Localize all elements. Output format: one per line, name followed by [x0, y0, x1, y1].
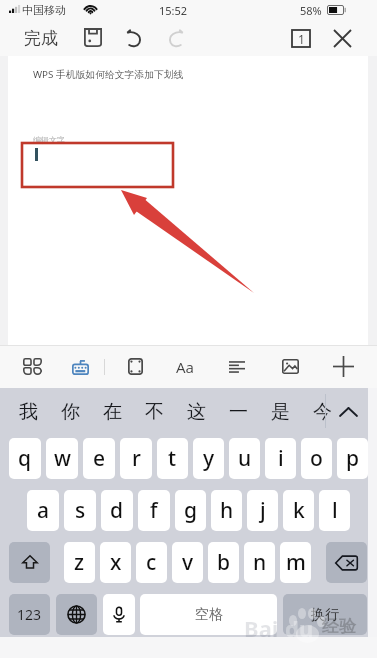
staticText: f — [150, 496, 158, 525]
button[interactable]: Voice input — [103, 594, 135, 635]
button[interactable]: f — [138, 490, 170, 531]
staticText: Bai — [244, 613, 279, 643]
button[interactable]: Insert picture — [272, 345, 308, 388]
staticText: p — [346, 444, 360, 473]
staticText: u — [238, 444, 252, 473]
staticText: m — [286, 548, 306, 577]
staticText: 是 — [271, 400, 290, 424]
button[interactable]: d — [101, 490, 133, 531]
button[interactable]: a — [27, 490, 59, 531]
button[interactable]: 在 — [91, 388, 133, 435]
button[interactable]: w — [46, 438, 78, 479]
staticText: r — [132, 444, 141, 473]
button[interactable]: 是 — [259, 388, 301, 435]
button[interactable]: g — [175, 490, 206, 531]
staticText: e — [93, 444, 106, 473]
button[interactable]: m — [280, 542, 311, 583]
button[interactable]: i — [265, 438, 296, 479]
staticText: h — [220, 496, 234, 525]
button[interactable]: 换行 — [283, 594, 367, 635]
button[interactable]: u — [229, 438, 260, 479]
button[interactable]: e — [83, 438, 115, 479]
button[interactable]: h — [211, 490, 242, 531]
button[interactable]: Undo — [119, 20, 149, 56]
button[interactable]: Switch language — [56, 594, 97, 635]
button[interactable]: 一 — [217, 388, 259, 435]
staticText: 58% — [300, 3, 322, 18]
button[interactable]: y — [193, 438, 224, 479]
button[interactable]: Font — [167, 345, 203, 388]
staticText: b — [217, 548, 231, 577]
staticText: q — [18, 444, 32, 473]
button[interactable]: b — [208, 542, 239, 583]
button[interactable]: Insert — [325, 345, 361, 388]
button[interactable]: c — [136, 542, 167, 583]
button[interactable]: 今 — [301, 388, 343, 435]
button[interactable]: z — [64, 542, 95, 583]
staticText: 你 — [61, 400, 80, 424]
button[interactable]: Backspace — [326, 542, 367, 583]
button[interactable]: 完成 — [12, 20, 70, 56]
button[interactable]: Save — [78, 20, 108, 56]
button[interactable]: Select area — [117, 345, 153, 388]
staticText: 今 — [313, 400, 332, 424]
button[interactable]: 你 — [49, 388, 91, 435]
button[interactable]: Page number — [286, 20, 316, 56]
staticText: t — [168, 444, 177, 473]
button[interactable]: Apps — [14, 345, 50, 388]
staticText: 完成 — [24, 28, 58, 49]
staticText: k — [293, 496, 305, 525]
staticText: 这 — [187, 400, 206, 424]
button[interactable]: Paragraph — [219, 345, 255, 388]
button[interactable]: q — [9, 438, 41, 479]
button[interactable]: r — [120, 438, 152, 479]
button[interactable]: x — [100, 542, 131, 583]
staticText: 换行 — [311, 606, 339, 624]
staticText: n — [253, 548, 267, 577]
button[interactable]: More candidates — [327, 388, 369, 435]
button[interactable]: Numbers — [9, 594, 50, 635]
staticText: v — [182, 548, 194, 577]
button[interactable]: Close — [327, 20, 357, 56]
staticText: du — [285, 613, 314, 643]
button[interactable]: Shift — [9, 542, 50, 583]
staticText: d — [110, 496, 124, 525]
button[interactable]: 空格 — [140, 594, 277, 635]
staticText: w — [54, 444, 71, 473]
staticText: 在 — [103, 400, 122, 424]
staticText: 空格 — [195, 606, 223, 624]
button[interactable]: Redo — [161, 20, 191, 56]
staticText: y — [203, 444, 215, 473]
button[interactable]: k — [283, 490, 314, 531]
button[interactable]: l — [319, 490, 350, 531]
button[interactable]: v — [172, 542, 203, 583]
staticText: s — [75, 496, 86, 525]
button[interactable]: p — [337, 438, 368, 479]
staticText: i — [278, 444, 284, 473]
staticText: 我 — [19, 400, 38, 424]
staticText: l — [332, 496, 338, 525]
staticText: c — [146, 548, 157, 577]
staticText: 不 — [145, 400, 164, 424]
button[interactable]: j — [247, 490, 278, 531]
button[interactable]: Keyboard — [62, 345, 98, 388]
staticText: x — [110, 548, 122, 577]
staticText: 中国移动 — [22, 3, 66, 17]
button[interactable]: s — [64, 490, 96, 531]
staticText: g — [184, 496, 198, 525]
button[interactable]: 我 — [7, 388, 49, 435]
staticText: z — [74, 548, 85, 577]
button[interactable]: t — [157, 438, 188, 479]
button[interactable]: n — [244, 542, 275, 583]
button[interactable]: 不 — [133, 388, 175, 435]
button[interactable]: 这 — [175, 388, 217, 435]
button[interactable]: o — [301, 438, 332, 479]
staticText: 1 — [298, 31, 305, 47]
staticText: 123 — [17, 605, 42, 624]
staticText: j — [260, 496, 266, 525]
staticText: a — [37, 496, 50, 525]
staticText: o — [310, 444, 323, 473]
staticText: WPS 手机版如何给文字添加下划线 — [33, 68, 184, 81]
staticText: 15:52 — [159, 3, 188, 18]
staticText: 经验 — [322, 616, 356, 637]
